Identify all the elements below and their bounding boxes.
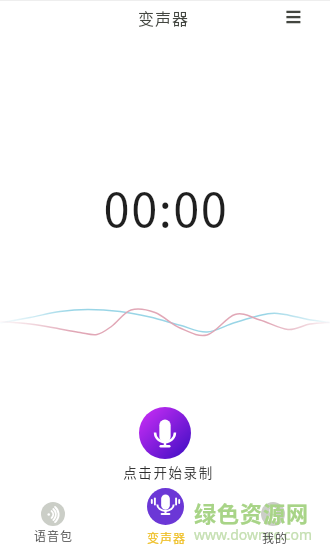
staticText: 变声器: [138, 6, 190, 29]
button[interactable]: Menu: [281, 6, 305, 28]
staticText: 语音包: [34, 527, 74, 544]
staticText: www.downcc.com: [194, 525, 313, 544]
staticText: 绿色资源网: [194, 496, 310, 528]
button[interactable]: 语音包: [19, 498, 87, 546]
staticText: 点击开始录制: [123, 462, 214, 482]
button[interactable]: Start recording: [139, 407, 191, 459]
staticText: 变声器: [147, 529, 187, 546]
button[interactable]: 变声器: [131, 488, 199, 544]
button[interactable]: 我的: [239, 498, 307, 546]
staticText: 我的: [262, 529, 289, 546]
staticText: 00:00: [1, 172, 330, 240]
